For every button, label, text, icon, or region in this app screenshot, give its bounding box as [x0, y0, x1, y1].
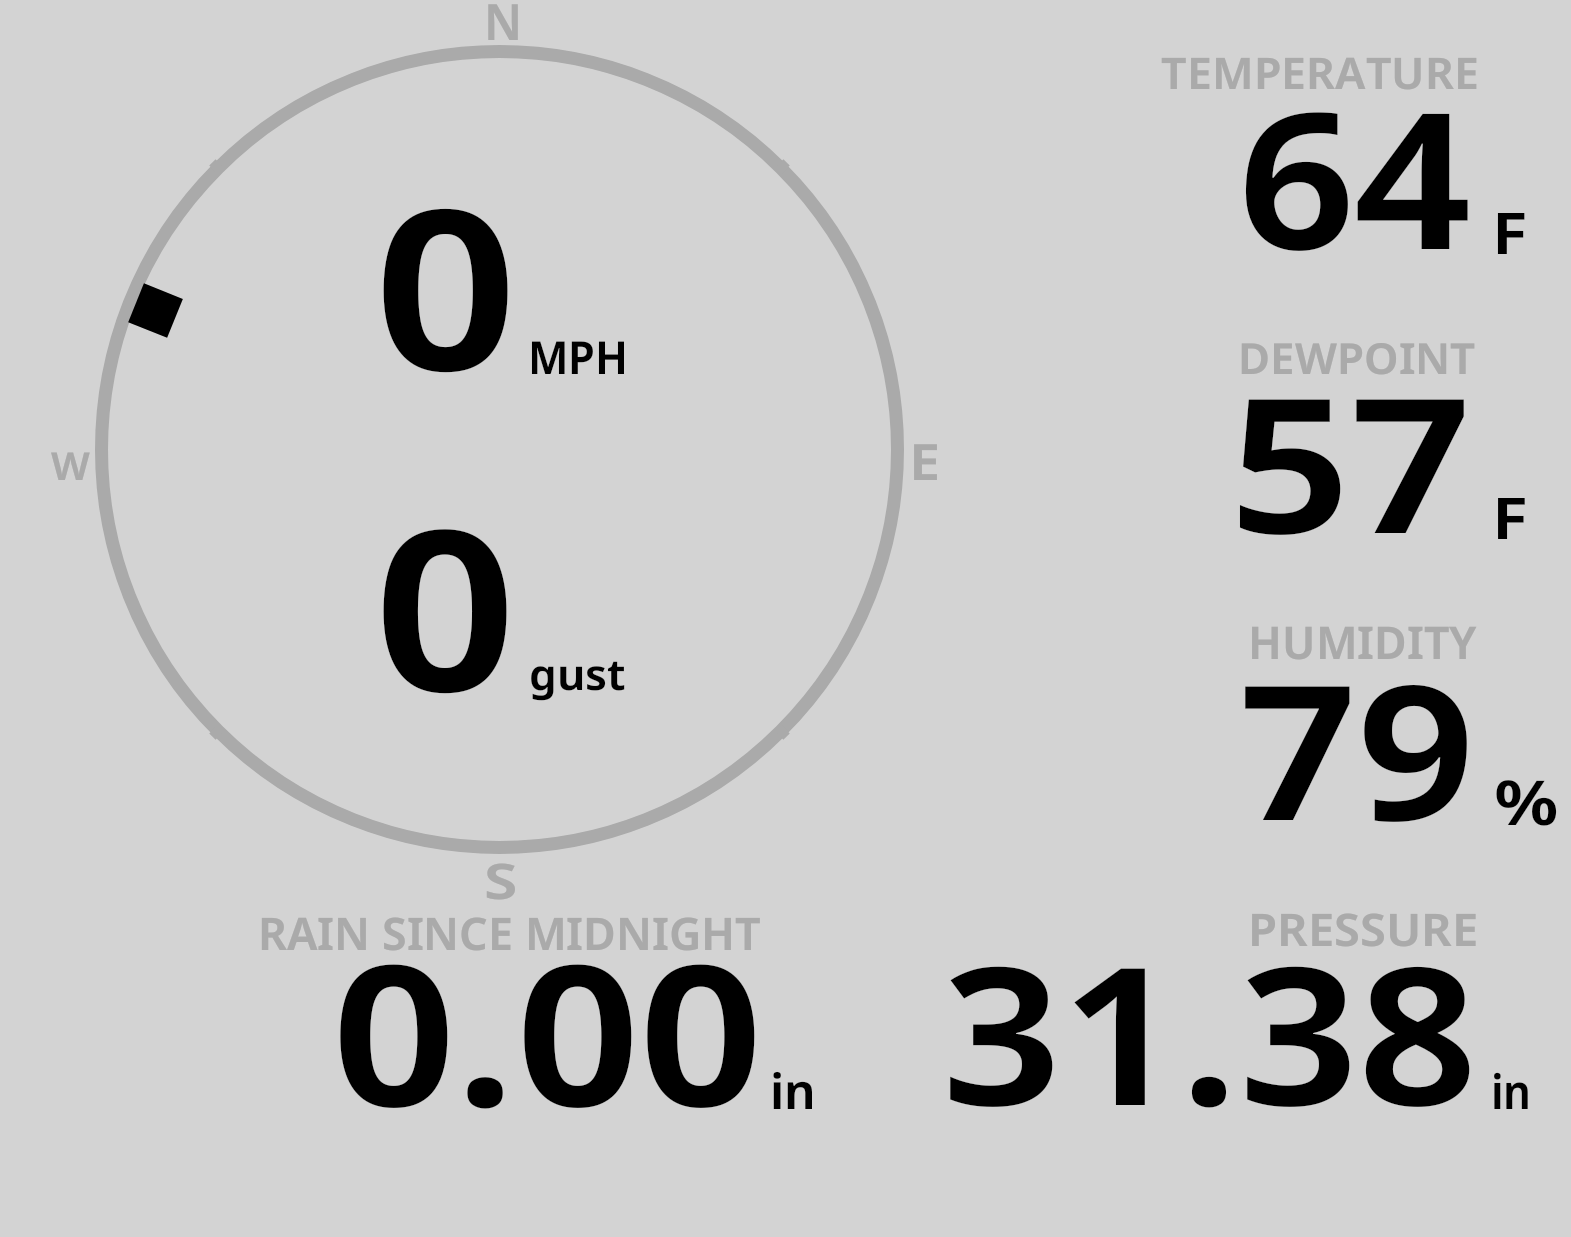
- button[interactable]: TEMPERATURE 64 F: [1100, 25, 1571, 290]
- button[interactable]: HUMIDITY 79 %: [1100, 595, 1571, 860]
- button[interactable]: PRESSURE 31.38 in: [880, 890, 1560, 1130]
- button[interactable]: RAIN SINCE MIDNIGHT 0.00 in: [200, 890, 840, 1130]
- button[interactable]: Wind 0 MPH, 0 gust, direction west north…: [85, 35, 915, 865]
- button[interactable]: DEWPOINT 57 F: [1100, 310, 1571, 575]
